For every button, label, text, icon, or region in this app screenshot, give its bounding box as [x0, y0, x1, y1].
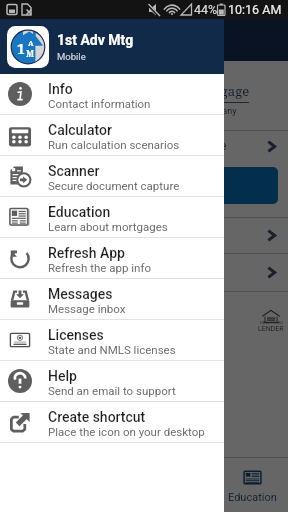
staticText: Info [48, 81, 73, 97]
button[interactable]: Apply for a Mortgage [0, 131, 288, 161]
staticText: 1st Advantage Mortgage [100, 82, 250, 100]
staticText: Contact information [48, 97, 151, 110]
staticText: Contact Us [114, 266, 173, 280]
staticText: Send an email to support [48, 384, 176, 397]
staticText: 10:16 AM [228, 2, 282, 17]
staticText: Mobile [57, 51, 86, 62]
staticText: 1 [17, 39, 25, 58]
button[interactable]: Refresh App [0, 238, 224, 278]
staticText: 44% [194, 2, 218, 17]
staticText: Run calculation scenarios [48, 138, 180, 151]
button[interactable]: Education [216, 458, 288, 512]
staticText: Help [48, 368, 77, 384]
staticText: Learn about mortgages [48, 220, 168, 233]
staticText: M [26, 48, 35, 60]
staticText: Create shortcut [48, 409, 146, 425]
staticText: State and NMLS licenses [48, 343, 176, 356]
staticText: 1st Adv Mtg [57, 32, 134, 48]
staticText: A [28, 38, 34, 48]
button[interactable]: Education [0, 197, 224, 237]
staticText: Education [228, 491, 277, 504]
staticText: Apply for a Mortgage [114, 139, 227, 153]
staticText: Licenses [48, 327, 104, 343]
staticText: CALCULATE MY PAYMENT [73, 179, 216, 193]
staticText: Place the icon on your desktop [48, 425, 205, 438]
button[interactable]: Messages [0, 279, 224, 319]
button[interactable]: Contact Us [0, 254, 288, 291]
staticText: 1st Advantage Mortgage [44, 32, 198, 48]
button[interactable]: Help [0, 361, 224, 401]
button[interactable]: Info [0, 74, 224, 114]
staticText: Refresh the app info [48, 261, 151, 274]
button[interactable]: CALCULATE MY PAYMENT [10, 167, 278, 204]
button[interactable]: Create shortcut [0, 402, 224, 442]
staticText: A Draper and Kramer Company [113, 106, 237, 117]
staticText: Calculator [48, 122, 112, 138]
staticText: Refresh App [48, 245, 125, 261]
button[interactable]: Scanner [0, 156, 224, 196]
staticText: Message inbox [48, 302, 126, 315]
staticText: Scanner [48, 163, 100, 179]
staticText: Secure document capture [48, 179, 180, 192]
staticText: Messages [48, 286, 113, 302]
staticText: EQUAL HOUSING [260, 321, 283, 325]
button[interactable]: Licenses [0, 320, 224, 360]
button[interactable]: Loan Status [0, 218, 288, 253]
staticText: Education [48, 204, 111, 220]
staticText: Loan Status [114, 229, 178, 243]
button[interactable]: Calculator [0, 115, 224, 155]
staticText: LENDER [258, 325, 284, 333]
